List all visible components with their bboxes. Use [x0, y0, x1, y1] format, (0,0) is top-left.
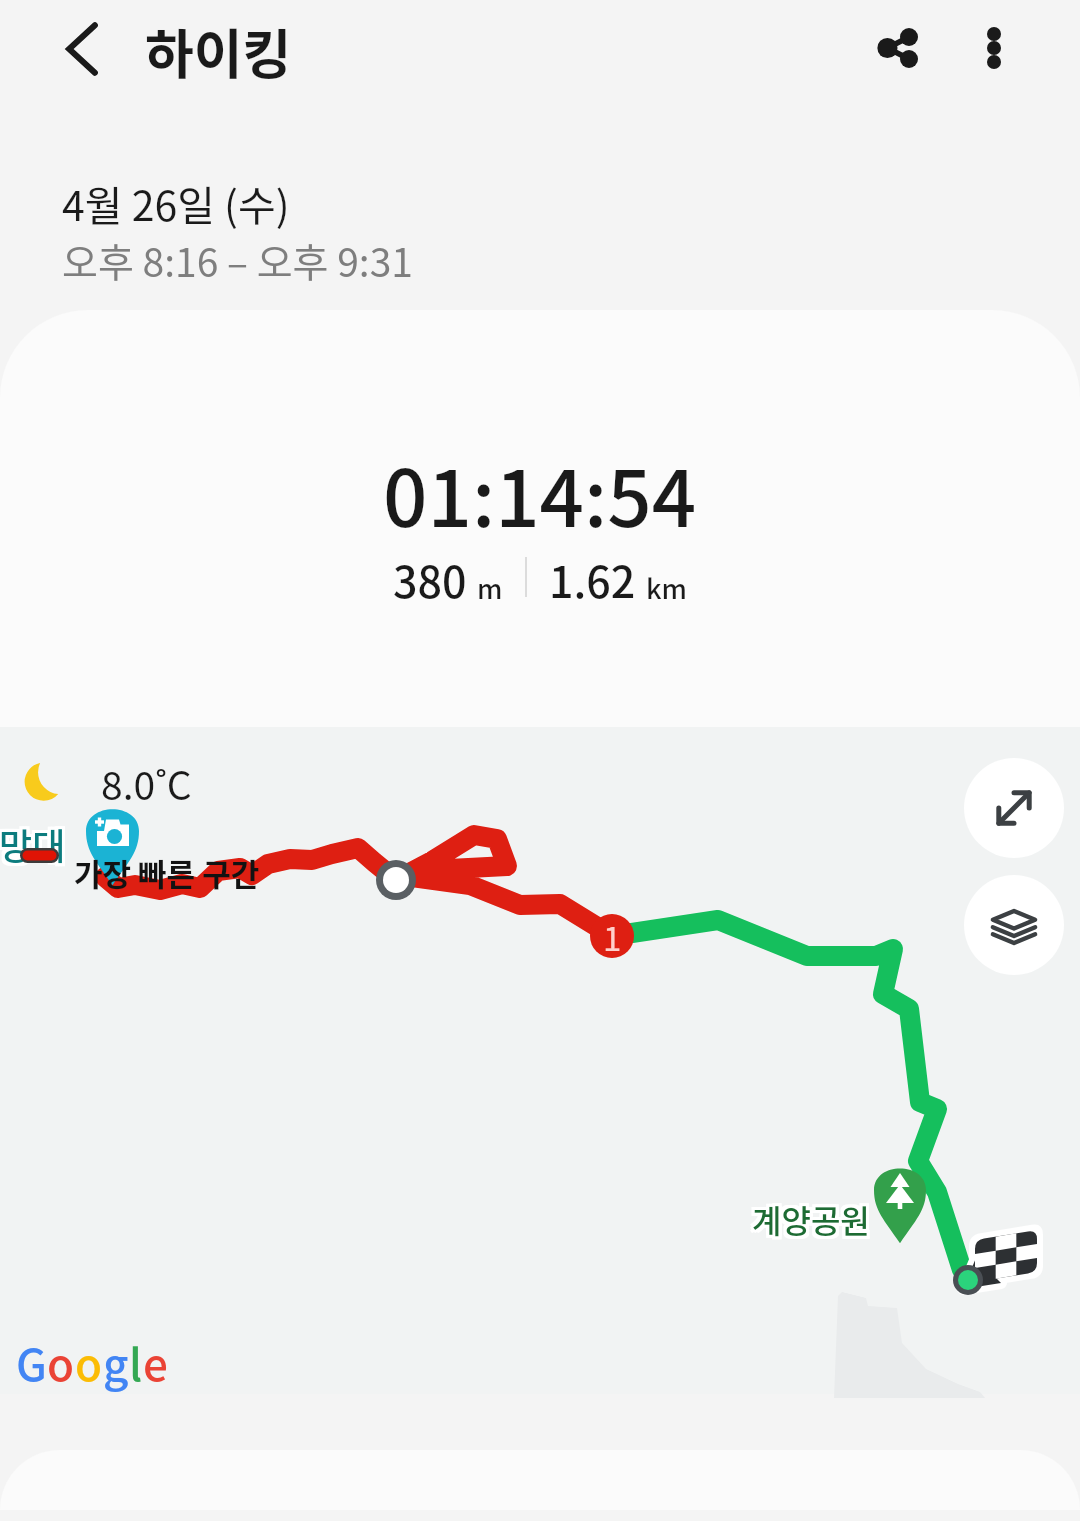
staticText: 380	[393, 548, 467, 610]
staticText: m	[477, 568, 503, 607]
button[interactable]: Share	[850, 0, 946, 96]
staticText: e	[143, 1330, 168, 1394]
staticText: 전망대	[0, 815, 69, 867]
button[interactable]: Map layers	[964, 875, 1064, 975]
staticText: 계양공원	[752, 1196, 870, 1242]
staticText: 전망대	[0, 818, 66, 870]
staticText: o	[47, 1330, 75, 1394]
staticText: 계양공원	[755, 1199, 873, 1245]
staticText: 계양공원	[749, 1193, 867, 1239]
staticText: 계양공원	[749, 1199, 867, 1245]
staticText: 전망대	[0, 815, 66, 867]
staticText: o	[75, 1330, 103, 1394]
staticText: 전망대	[0, 821, 63, 873]
staticText: 1	[603, 913, 622, 961]
staticText: 8.0˚C	[101, 755, 192, 812]
staticText: g	[103, 1330, 129, 1394]
button[interactable]: Route map	[0, 727, 1080, 1394]
staticText: 전망대	[0, 818, 63, 870]
button[interactable]: More options	[946, 0, 1042, 96]
staticText: 오후 8:16 – 오후 9:31	[62, 232, 413, 288]
staticText: 계양공원	[755, 1193, 873, 1239]
staticText: l	[129, 1330, 143, 1394]
staticText: 전망대	[0, 818, 69, 870]
staticText: 전망대	[0, 821, 69, 873]
staticText: 01:14:54	[383, 437, 697, 550]
staticText: 계양공원	[749, 1196, 867, 1242]
staticText: 계양공원	[752, 1199, 870, 1245]
staticText: km	[646, 568, 687, 607]
button[interactable]: Expand map	[964, 758, 1064, 858]
staticText: 계양공원	[752, 1193, 870, 1239]
staticText: 1.62	[549, 548, 636, 610]
button[interactable]: Back	[42, 9, 122, 89]
staticText: 계양공원	[755, 1196, 873, 1242]
staticText: 하이킹	[145, 13, 292, 90]
staticText: 가장 빠른 구간	[74, 850, 260, 895]
staticText: 4월 26일 (수)	[62, 173, 290, 232]
staticText: G	[16, 1330, 47, 1394]
staticText: 전망대	[0, 821, 66, 873]
staticText: 전망대	[0, 815, 63, 867]
